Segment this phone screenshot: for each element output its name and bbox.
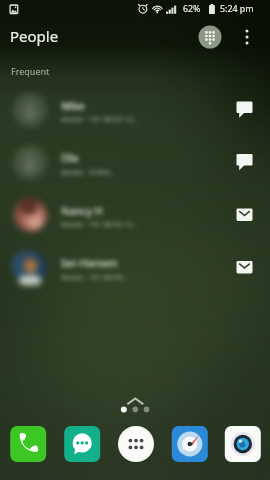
- button[interactable]: Contact: [0, 84, 228, 136]
- button[interactable]: Dial pad: [198, 25, 222, 49]
- button[interactable]: Send email: [228, 189, 270, 241]
- button[interactable]: Send message: [228, 137, 270, 189]
- button[interactable]: Camera: [225, 426, 261, 462]
- button[interactable]: Browser: [172, 426, 208, 462]
- button[interactable]: App drawer: [118, 392, 152, 416]
- button[interactable]: Contact: [0, 242, 228, 294]
- button[interactable]: Phone: [10, 426, 46, 462]
- button[interactable]: Contact: [0, 189, 228, 241]
- button[interactable]: All apps: [118, 426, 154, 462]
- button[interactable]: Send email: [228, 242, 270, 294]
- button[interactable]: Messages: [64, 426, 100, 462]
- button[interactable]: More options: [235, 23, 261, 49]
- button[interactable]: Send message: [228, 84, 270, 136]
- button[interactable]: Contact: [0, 137, 228, 189]
